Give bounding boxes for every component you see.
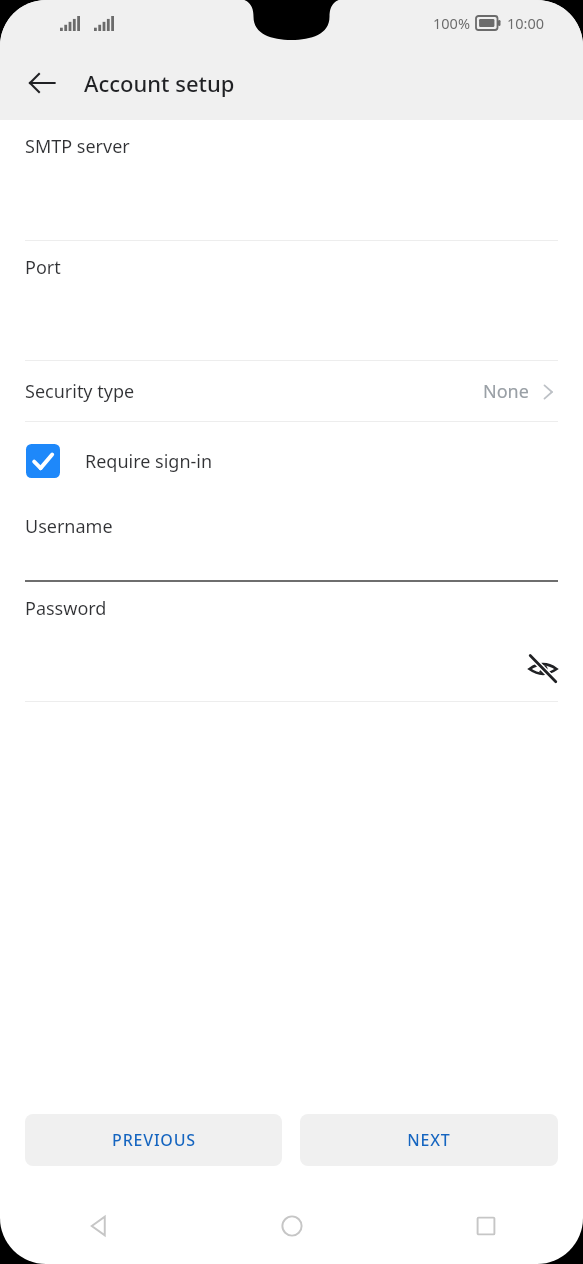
button[interactable]: Back: [0, 1188, 195, 1264]
staticText: Account setup: [84, 68, 235, 98]
button[interactable]: Home: [195, 1188, 389, 1264]
staticText: None: [483, 379, 529, 404]
button[interactable]: Recent apps: [389, 1188, 583, 1264]
button[interactable]: Show password: [517, 643, 569, 695]
staticText: PREVIOUS: [112, 1129, 196, 1151]
button[interactable]: NEXT: [300, 1114, 558, 1166]
button[interactable]: SMTP server: [0, 120, 583, 240]
staticText: Password: [25, 596, 107, 621]
staticText: Port: [25, 255, 61, 280]
button[interactable]: Require sign-in: [0, 422, 583, 500]
staticText: SMTP server: [25, 134, 130, 159]
staticText: Security type: [25, 379, 135, 404]
button[interactable]: Port: [0, 241, 583, 360]
staticText: NEXT: [407, 1129, 451, 1151]
staticText: 10:00: [507, 13, 545, 33]
button[interactable]: Back: [14, 55, 70, 111]
staticText: Username: [25, 514, 113, 539]
staticText: 100%: [433, 13, 470, 33]
staticText: Require sign-in: [85, 449, 213, 474]
button[interactable]: PREVIOUS: [25, 1114, 282, 1166]
button[interactable]: Security type: [0, 361, 583, 421]
button[interactable]: Username: [0, 500, 583, 580]
